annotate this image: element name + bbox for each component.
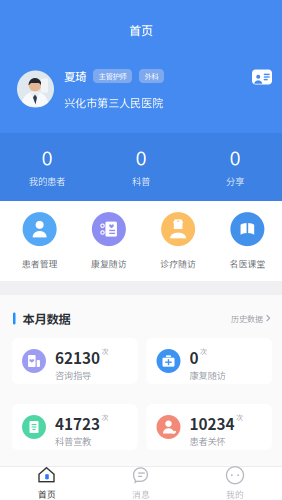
button[interactable]: 我的 — [188, 467, 282, 500]
staticText: 0 — [189, 346, 198, 368]
staticText: 次 — [101, 412, 108, 422]
button[interactable]: 0 — [0, 144, 94, 190]
staticText: 我的患者 — [29, 174, 65, 188]
staticText: 夏琦 — [64, 68, 86, 84]
staticText: 0 — [135, 142, 146, 171]
staticText: 62130 — [55, 346, 100, 368]
button[interactable]: 名医课堂 — [213, 212, 282, 270]
button[interactable]: 41723 — [12, 404, 137, 450]
staticText: 名医课堂 — [229, 257, 265, 270]
staticText: 本月数据 — [22, 310, 70, 327]
button[interactable]: 0 — [188, 144, 282, 190]
button[interactable]: 消息 — [94, 467, 188, 500]
staticText: 次 — [236, 412, 243, 422]
staticText: 0 — [41, 142, 52, 171]
staticText: 首页 — [129, 21, 153, 39]
button[interactable]: 患者管理 — [5, 212, 74, 270]
staticText: 我的 — [226, 488, 244, 500]
staticText: 科普 — [132, 174, 150, 188]
staticText: 41723 — [55, 412, 100, 434]
staticText: 康复随访 — [189, 368, 225, 382]
staticText: 科普宣教 — [55, 434, 91, 448]
staticText: 咨询指导 — [55, 368, 91, 382]
button[interactable]: 62130 — [12, 338, 137, 384]
staticText: 患者关怀 — [189, 434, 225, 448]
staticText: 次 — [200, 346, 207, 356]
staticText: 诊疗随访 — [160, 257, 196, 270]
staticText: 分享 — [226, 174, 244, 188]
button[interactable]: 电子名片 — [252, 69, 272, 84]
staticText: 主管护师 — [98, 71, 126, 81]
button[interactable]: 0 — [146, 338, 272, 384]
staticText: 患者管理 — [22, 257, 58, 270]
staticText: 兴化市第三人民医院 — [64, 94, 163, 110]
staticText: 外科 — [144, 71, 158, 81]
button[interactable]: 0 — [94, 144, 188, 190]
staticText: 首页 — [38, 488, 56, 500]
staticText: 康复随访 — [91, 257, 127, 270]
button[interactable]: 首页 — [0, 467, 94, 500]
button[interactable]: 历史数据 — [231, 313, 271, 324]
staticText: 消息 — [132, 488, 150, 500]
staticText: 次 — [101, 346, 108, 356]
staticText: 0 — [229, 142, 240, 171]
button[interactable]: 康复随访 — [74, 212, 143, 270]
button[interactable]: 10234 — [146, 404, 272, 450]
staticText: 10234 — [189, 412, 234, 434]
button[interactable]: 诊疗随访 — [143, 212, 213, 270]
staticText: 历史数据 — [231, 313, 263, 324]
